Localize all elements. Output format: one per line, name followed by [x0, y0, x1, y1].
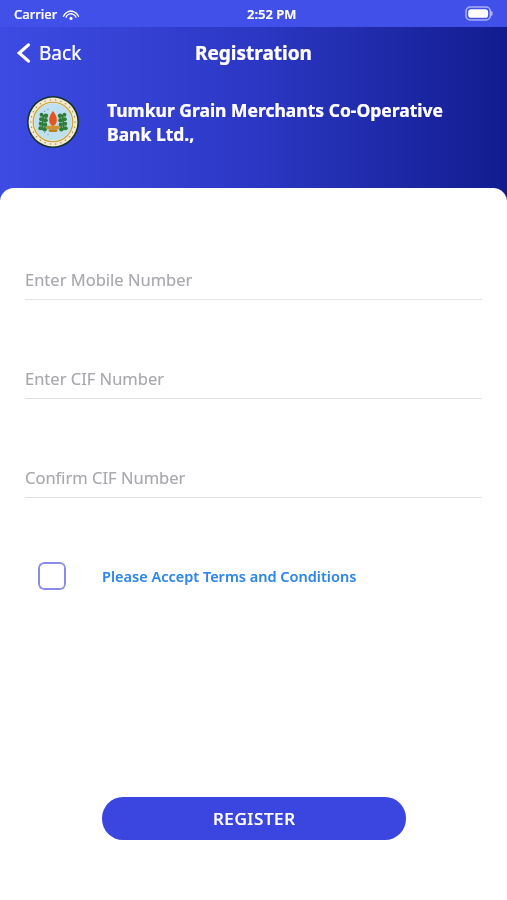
button[interactable]: Enter CIF Number	[25, 367, 482, 399]
button[interactable]: Back	[12, 34, 86, 72]
staticText: Enter CIF Number	[25, 367, 165, 389]
staticText: Carrier	[14, 5, 58, 23]
button[interactable]: Please Accept Terms and Conditions	[38, 558, 369, 594]
other: Battery	[466, 7, 493, 20]
staticText: Registration	[195, 40, 312, 66]
button[interactable]: Enter Mobile Number	[25, 268, 482, 300]
other: Wi-Fi	[63, 8, 79, 20]
staticText: Confirm CIF Number	[25, 466, 186, 488]
staticText: Enter Mobile Number	[25, 268, 193, 290]
staticText: Tumkur Grain Merchants Co-Operative Bank…	[107, 98, 491, 146]
staticText: Back	[39, 40, 82, 66]
button[interactable]: REGISTER	[102, 797, 406, 840]
button[interactable]: Confirm CIF Number	[25, 466, 482, 498]
staticText: REGISTER	[213, 807, 296, 830]
staticText: Please Accept Terms and Conditions	[102, 566, 357, 586]
staticText: 2:52 PM	[247, 5, 297, 23]
